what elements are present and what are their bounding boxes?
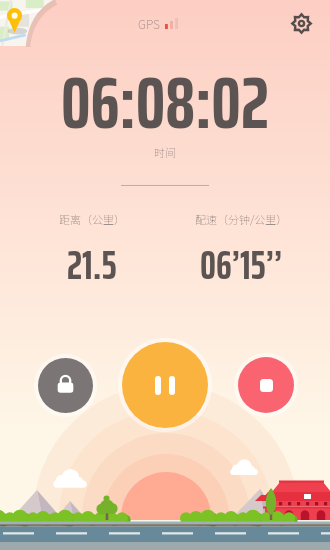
staticText: 距离（公里） [59, 211, 125, 227]
button[interactable]: Settings [285, 7, 317, 39]
staticText: 06:08:02 [61, 44, 269, 160]
button[interactable]: Pause [122, 342, 208, 428]
button[interactable]: Lock [38, 358, 93, 413]
button[interactable]: Stop [238, 357, 294, 413]
staticText: 时间 [0, 144, 330, 160]
staticText: 21.5 [67, 234, 117, 297]
staticText: GPS [138, 15, 160, 32]
staticText: 06’15’’ [200, 234, 283, 297]
staticText: 配速（分钟/公里） [195, 211, 288, 227]
